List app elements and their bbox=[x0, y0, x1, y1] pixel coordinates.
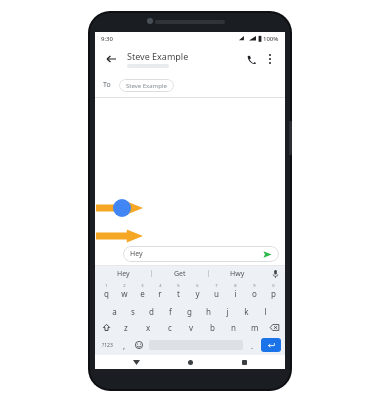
button[interactable]: 2 bbox=[115, 282, 133, 300]
button[interactable]: Get bbox=[152, 266, 208, 281]
staticText: m bbox=[251, 322, 259, 333]
staticText: Get bbox=[174, 269, 186, 279]
staticText: p bbox=[271, 288, 276, 299]
staticText: i bbox=[234, 288, 237, 299]
staticText: y bbox=[195, 288, 200, 299]
staticText: v bbox=[189, 322, 194, 333]
button[interactable]: f bbox=[161, 300, 180, 318]
button[interactable]: Shift bbox=[97, 318, 115, 336]
staticText: n bbox=[231, 322, 236, 333]
staticText: f bbox=[169, 306, 172, 317]
button[interactable]: l bbox=[256, 300, 275, 318]
staticText: 7 bbox=[215, 283, 218, 288]
button[interactable]: Backspace bbox=[265, 318, 283, 336]
staticText: x bbox=[146, 322, 151, 333]
staticText: 9:30 bbox=[101, 35, 113, 43]
button[interactable]: . bbox=[245, 336, 259, 354]
button[interactable]: 3 bbox=[133, 282, 151, 300]
staticText: c bbox=[168, 322, 172, 333]
button[interactable]: Voice input bbox=[265, 266, 285, 281]
button[interactable]: a bbox=[105, 300, 123, 318]
button[interactable]: z bbox=[115, 318, 137, 336]
button[interactable]: Back bbox=[123, 355, 149, 369]
button[interactable]: v bbox=[181, 318, 202, 336]
button[interactable]: c bbox=[159, 318, 181, 336]
staticText: Steve Example bbox=[127, 50, 189, 62]
button[interactable]: n bbox=[223, 318, 244, 336]
staticText: 5 bbox=[177, 283, 180, 288]
staticText: z bbox=[124, 322, 128, 333]
button[interactable]: j bbox=[218, 300, 237, 318]
staticText: 3 bbox=[141, 283, 144, 288]
staticText: ?123 bbox=[102, 342, 113, 349]
button[interactable]: 9 bbox=[245, 282, 264, 300]
button[interactable]: Enter bbox=[261, 338, 281, 352]
staticText: q bbox=[104, 288, 109, 299]
staticText: Hey bbox=[117, 269, 130, 279]
staticText: 100% bbox=[263, 35, 279, 43]
staticText: k bbox=[244, 306, 249, 317]
staticText: j bbox=[226, 306, 229, 317]
staticText: o bbox=[252, 288, 257, 299]
button[interactable]: Call bbox=[241, 49, 261, 69]
button[interactable]: b bbox=[202, 318, 223, 336]
staticText: To bbox=[103, 80, 111, 90]
button[interactable]: Hey bbox=[123, 246, 279, 262]
staticText: 2 bbox=[123, 283, 126, 288]
staticText: Hwy bbox=[230, 269, 245, 279]
staticText: 1 bbox=[105, 283, 108, 288]
staticText: . bbox=[251, 340, 254, 351]
staticText: a bbox=[112, 306, 117, 317]
button[interactable]: Hwy bbox=[209, 266, 265, 281]
staticText: s bbox=[131, 306, 135, 317]
button[interactable]: 7 bbox=[207, 282, 226, 300]
staticText: w bbox=[121, 288, 128, 299]
button[interactable]: 5 bbox=[169, 282, 188, 300]
staticText: Hey bbox=[130, 249, 143, 259]
staticText: h bbox=[206, 306, 211, 317]
button[interactable]: s bbox=[123, 300, 142, 318]
button[interactable]: k bbox=[237, 300, 256, 318]
button[interactable]: 6 bbox=[188, 282, 207, 300]
button[interactable]: h bbox=[199, 300, 218, 318]
staticText: 4 bbox=[159, 283, 162, 288]
staticText: 8 bbox=[234, 283, 237, 288]
staticText: 6 bbox=[196, 283, 199, 288]
button[interactable]: Steve Example bbox=[119, 79, 174, 92]
staticText: Steve Example bbox=[126, 82, 167, 90]
button[interactable]: x bbox=[137, 318, 159, 336]
button[interactable]: More options bbox=[261, 50, 279, 68]
button[interactable]: g bbox=[180, 300, 199, 318]
staticText: 0 bbox=[272, 283, 275, 288]
staticText: r bbox=[158, 288, 162, 299]
button[interactable]: d bbox=[142, 300, 161, 318]
staticText: t bbox=[177, 288, 180, 299]
staticText: e bbox=[140, 288, 145, 299]
button[interactable]: ?123 bbox=[97, 336, 117, 354]
staticText: l bbox=[264, 306, 267, 317]
button[interactable]: , bbox=[117, 336, 131, 354]
staticText: u bbox=[214, 288, 219, 299]
button[interactable]: 0 bbox=[264, 282, 283, 300]
button[interactable]: Hey bbox=[95, 266, 151, 281]
staticText: , bbox=[123, 340, 126, 351]
button[interactable]: 1 bbox=[97, 282, 115, 300]
button[interactable]: 4 bbox=[151, 282, 169, 300]
button[interactable]: Back bbox=[101, 49, 121, 69]
button[interactable]: Emoji bbox=[131, 336, 147, 354]
staticText: 9 bbox=[253, 283, 256, 288]
button[interactable]: 8 bbox=[226, 282, 245, 300]
staticText: b bbox=[210, 322, 215, 333]
button[interactable]: Recents bbox=[231, 355, 257, 369]
staticText: g bbox=[187, 306, 192, 317]
staticText: d bbox=[149, 306, 154, 317]
button[interactable]: Home bbox=[177, 355, 203, 369]
button[interactable]: m bbox=[244, 318, 265, 336]
